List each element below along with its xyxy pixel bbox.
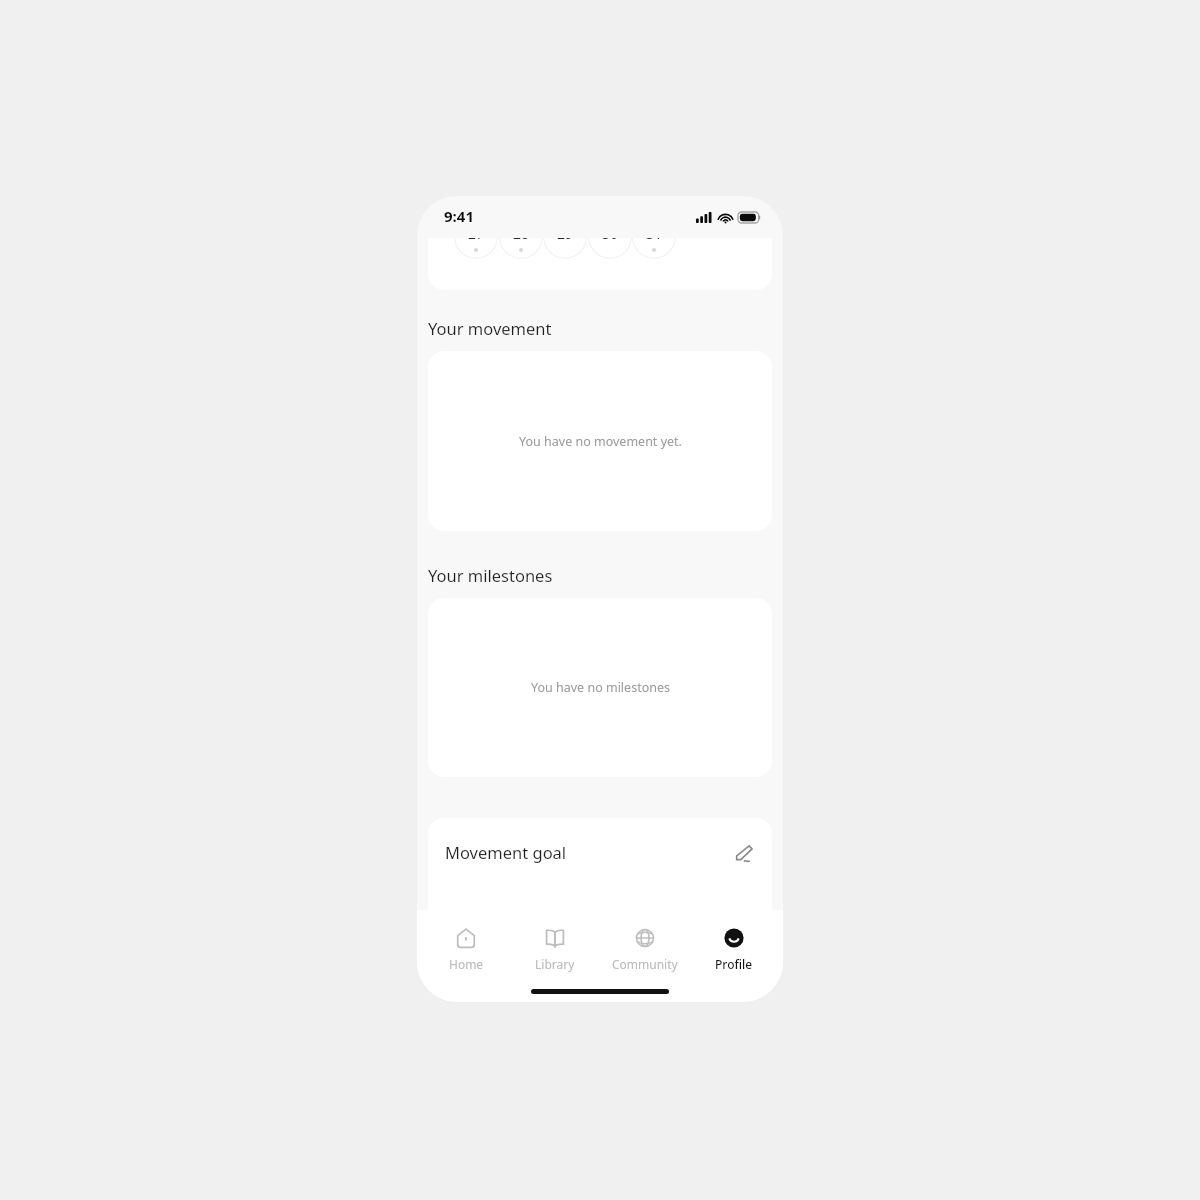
- staticText: Library: [535, 956, 575, 972]
- staticText: Movement goal: [445, 841, 567, 863]
- button[interactable]: 28: [499, 238, 543, 259]
- button[interactable]: 27: [454, 238, 498, 259]
- staticText: Your movement: [428, 317, 552, 339]
- staticText: 30: [602, 238, 619, 243]
- button[interactable]: 31: [632, 238, 676, 259]
- staticText: Your milestones: [428, 564, 553, 586]
- button[interactable]: 30: [588, 238, 632, 259]
- staticText: 29: [557, 238, 574, 243]
- button[interactable]: Home: [426, 922, 506, 976]
- button[interactable]: Profile: [694, 922, 774, 976]
- staticText: 9:41: [444, 206, 474, 226]
- button[interactable]: Edit movement goal: [726, 836, 760, 870]
- staticText: Profile: [715, 956, 753, 972]
- staticText: 31: [646, 238, 663, 243]
- staticText: You have no milestones: [531, 679, 670, 696]
- staticText: Home: [449, 956, 484, 972]
- staticText: 28: [513, 238, 530, 243]
- staticText: You have no movement yet.: [519, 433, 682, 450]
- button[interactable]: You have no movement yet.: [428, 351, 772, 531]
- button[interactable]: Library: [515, 922, 595, 976]
- button[interactable]: You have no milestones: [428, 598, 772, 777]
- button[interactable]: Movement goal: [428, 818, 772, 938]
- button[interactable]: 29: [543, 238, 587, 259]
- button[interactable]: Community: [605, 922, 685, 976]
- staticText: 27: [468, 238, 485, 243]
- staticText: Community: [612, 956, 678, 972]
